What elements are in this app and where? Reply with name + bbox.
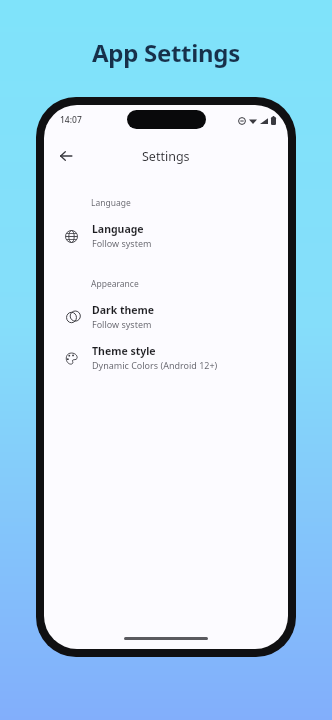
staticText: Follow system: [92, 237, 152, 249]
staticText: App Settings: [0, 36, 332, 69]
button[interactable]: Theme style: [44, 337, 288, 378]
staticText: Settings: [142, 148, 190, 165]
button[interactable]: Language: [44, 215, 288, 256]
staticText: Dynamic Colors (Android 12+): [92, 359, 218, 371]
button[interactable]: Back: [50, 140, 82, 172]
staticText: Follow system: [92, 318, 152, 330]
staticText: Theme style: [92, 344, 156, 358]
staticText: Dark theme: [92, 303, 155, 317]
staticText: Appearance: [91, 278, 139, 290]
staticText: 14:07: [60, 114, 82, 126]
staticText: Language: [91, 197, 131, 209]
staticText: Language: [92, 222, 144, 236]
button[interactable]: Dark theme: [44, 296, 288, 337]
